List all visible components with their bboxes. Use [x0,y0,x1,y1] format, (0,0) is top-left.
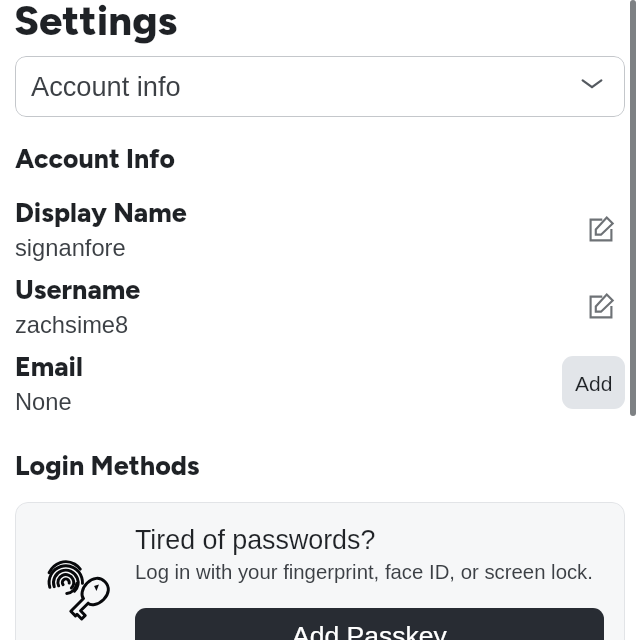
staticText: Login Methods [15,450,200,482]
staticText: Display Name [15,197,187,229]
button[interactable]: Add Passkey [135,608,604,640]
staticText: zachsime8 [15,312,129,338]
staticText: Settings [14,0,178,45]
staticText: Account info [31,71,181,101]
button[interactable]: Account info [15,56,625,117]
button[interactable]: Edit Display Name [583,212,619,248]
staticText: signanfore [15,235,126,261]
staticText: Add [575,372,613,395]
staticText: Email [15,351,83,383]
button[interactable]: Edit Username [583,289,619,325]
staticText: Log in with your fingerprint, face ID, o… [135,561,593,584]
staticText: Add Passkey [292,621,447,640]
staticText: Account Info [15,143,175,175]
staticText: Tired of passwords? [135,525,376,555]
button[interactable]: Add [562,356,625,409]
other: Expand account selector [579,70,605,96]
staticText: Username [15,274,141,306]
staticText: None [15,389,72,415]
